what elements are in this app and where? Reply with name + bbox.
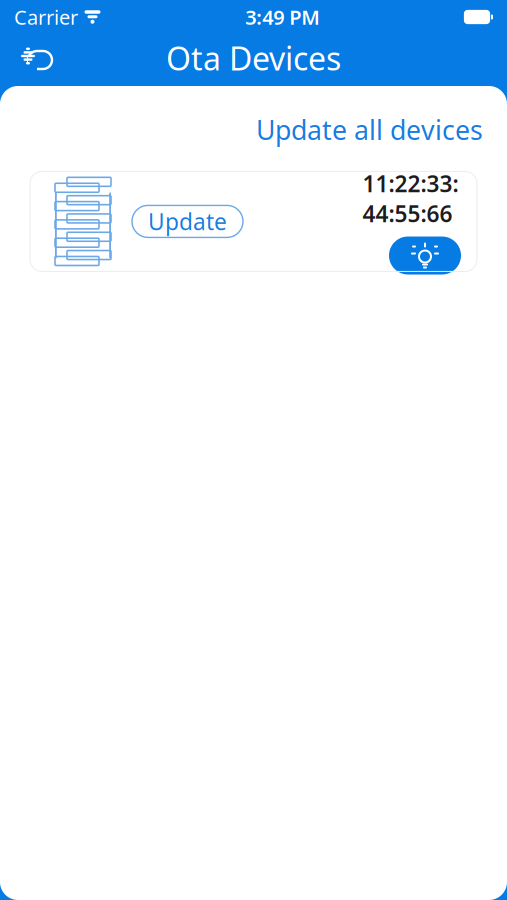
button[interactable]: Update <box>132 205 243 237</box>
staticText: Carrier <box>14 4 78 30</box>
button[interactable]: Update all devices <box>256 112 483 147</box>
staticText: Update <box>148 206 227 236</box>
staticText: Ota Devices <box>166 37 341 79</box>
staticText: 11:22:33:44:55:66 <box>362 168 458 228</box>
button[interactable]: Back <box>14 36 60 80</box>
button[interactable]: Toggle light <box>389 236 461 274</box>
staticText: 3:49 PM <box>245 4 320 30</box>
staticText: Update all devices <box>256 112 483 147</box>
